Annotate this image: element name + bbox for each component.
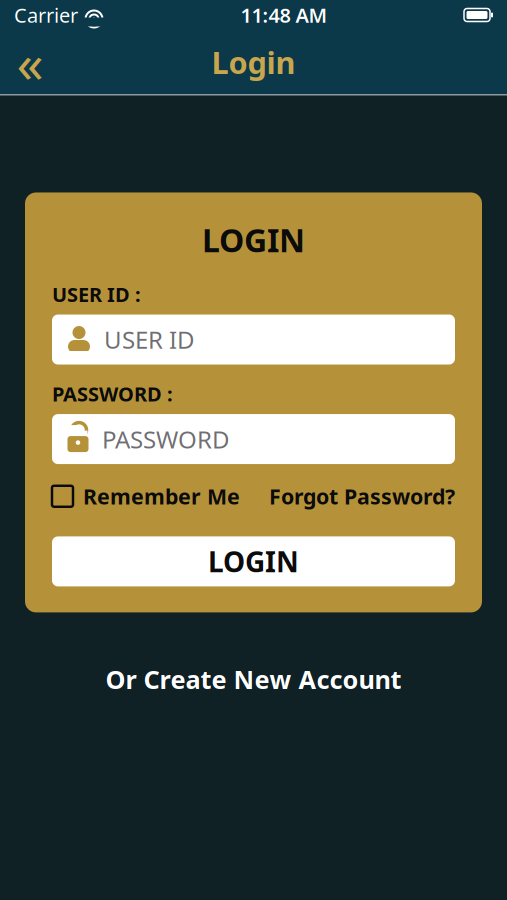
- staticText: «: [16, 27, 43, 97]
- staticText: Forgot Password?: [269, 482, 455, 510]
- button[interactable]: LOGIN: [52, 536, 455, 586]
- button[interactable]: Or Create New Account: [85, 652, 421, 706]
- staticText: Login: [211, 42, 295, 82]
- staticText: Remember Me: [83, 482, 240, 510]
- staticText: LOGIN: [202, 218, 305, 261]
- button[interactable]: Back: [8, 40, 52, 84]
- staticText: USER ID :: [52, 281, 141, 308]
- staticText: Or Create New Account: [105, 662, 401, 696]
- staticText: PASSWORD :: [52, 380, 173, 407]
- button[interactable]: Forgot Password?: [269, 482, 455, 510]
- staticText: USER ID: [104, 324, 195, 355]
- staticText: 11:48 AM: [240, 2, 327, 28]
- staticText: LOGIN: [208, 543, 299, 580]
- staticText: Carrier: [14, 2, 78, 28]
- button[interactable]: Remember Me: [52, 482, 240, 510]
- staticText: PASSWORD: [102, 423, 230, 455]
